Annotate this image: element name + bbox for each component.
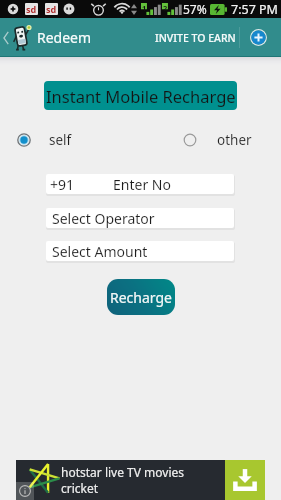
staticText: +91 <box>50 175 75 194</box>
button[interactable]: Select Operator <box>46 208 234 228</box>
button[interactable]: Instant Mobile Recharge <box>44 81 237 110</box>
staticText: Instant Mobile Recharge <box>46 85 236 107</box>
button[interactable]: other <box>183 130 252 149</box>
staticText: hotstar live TV movies <box>61 464 185 480</box>
staticText: other <box>217 131 252 149</box>
button[interactable]: self <box>17 130 72 149</box>
button[interactable]: Add <box>250 29 267 46</box>
staticText: Select Operator <box>52 209 155 228</box>
staticText: Redeem <box>37 28 92 47</box>
staticText: Recharge <box>110 288 172 307</box>
button[interactable]: hotstar live TV movies <box>16 460 265 500</box>
other: Back <box>2 30 10 46</box>
staticText: self <box>49 131 72 149</box>
button[interactable]: INVITE TO EARN <box>150 18 241 57</box>
button[interactable]: Recharge <box>107 279 175 315</box>
other: Install <box>232 467 258 493</box>
button[interactable]: Select Amount <box>46 241 234 261</box>
staticText: 2 <box>163 3 168 13</box>
staticText: 7:57 PM <box>231 1 278 18</box>
staticText: sd <box>26 3 37 15</box>
staticText: Enter No <box>113 175 171 194</box>
staticText: Select Amount <box>52 242 148 261</box>
staticText: cricket <box>61 480 99 496</box>
button[interactable]: +91 <box>46 174 234 194</box>
button[interactable]: Back <box>0 18 100 57</box>
staticText: INVITE TO EARN <box>155 31 236 45</box>
staticText: 57% <box>183 1 207 17</box>
staticText: 1 <box>142 3 147 13</box>
staticText: sd <box>46 3 57 15</box>
button[interactable]: Install <box>225 460 265 500</box>
